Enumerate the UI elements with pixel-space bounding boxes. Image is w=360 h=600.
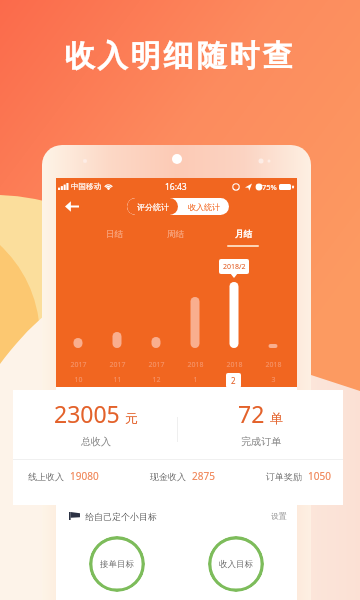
staticText: 2 [231, 375, 236, 386]
staticText: 3 [271, 375, 276, 385]
button[interactable]: 周结 [157, 229, 193, 247]
button[interactable]: 收入目标 [208, 536, 264, 592]
staticText: 线上收入 [28, 471, 64, 482]
staticText: 2017 [109, 360, 126, 370]
staticText: 10 [74, 375, 83, 385]
staticText: 日结 [106, 229, 123, 240]
staticText: 16:43 [165, 181, 187, 193]
staticText: 设置 [271, 511, 287, 521]
staticText: 收入明细随时查 [0, 37, 360, 75]
staticText: 现金收入 [150, 471, 186, 482]
staticText: 2018 [265, 360, 282, 370]
staticText: 总收入 [81, 435, 111, 448]
staticText: 2875 [192, 469, 215, 483]
staticText: 评分统计 [137, 202, 169, 212]
staticText: 单 [270, 410, 283, 426]
button[interactable]: 日结 [96, 229, 132, 247]
button[interactable]: 月结 [225, 229, 261, 247]
staticText: 11 [113, 375, 122, 385]
staticText: 月结 [235, 229, 252, 240]
button[interactable]: 收入统计 [178, 198, 229, 215]
staticText: 1050 [308, 469, 331, 483]
staticText: 周结 [167, 229, 184, 240]
staticText: 给自己定个小目标 [85, 511, 157, 522]
staticText: 2017 [148, 360, 165, 370]
staticText: 完成订单 [241, 435, 281, 448]
staticText: 收入目标 [219, 559, 253, 570]
staticText: 2018/2 [223, 262, 246, 272]
staticText: 12 [152, 375, 161, 385]
staticText: 72 [238, 398, 265, 429]
staticText: 2018 [187, 360, 204, 370]
staticText: 元 [125, 410, 138, 426]
staticText: 75% [262, 182, 277, 192]
staticText: 收入统计 [188, 202, 220, 212]
button[interactable]: 评分统计 [127, 198, 178, 215]
staticText: 1 [193, 375, 198, 385]
staticText: 2018 [226, 360, 243, 370]
staticText: 订单奖励 [266, 471, 302, 482]
button[interactable]: Back [65, 201, 79, 212]
button[interactable]: 设置 [271, 511, 287, 521]
button[interactable]: 接单目标 [89, 536, 145, 592]
staticText: 2 [232, 375, 237, 385]
staticText: 2017 [70, 360, 87, 370]
staticText: 23005 [54, 398, 120, 429]
staticText: 接单目标 [100, 559, 134, 570]
staticText: 中国移动 [71, 182, 101, 191]
staticText: 19080 [70, 469, 99, 483]
